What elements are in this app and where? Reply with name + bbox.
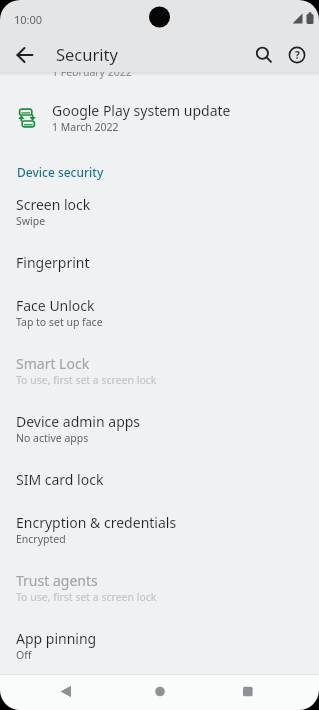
staticText: Fingerprint	[16, 253, 90, 272]
staticText: Security	[56, 43, 118, 65]
button[interactable]: Fingerprint	[0, 245, 319, 288]
staticText: Off	[16, 648, 32, 662]
button[interactable]: SIM card lock	[0, 462, 319, 505]
button[interactable]: ?	[281, 39, 313, 71]
staticText: SIM card lock	[16, 470, 104, 489]
staticText: Smart Lock	[16, 354, 90, 373]
button[interactable]: Smart Lock	[0, 346, 319, 404]
button[interactable]: Encryption & credentials	[0, 505, 319, 563]
staticText: 10:00	[14, 12, 43, 27]
staticText: 1 March 2022	[52, 120, 119, 134]
staticText: ?	[295, 48, 300, 62]
button[interactable]: Trust agents	[0, 563, 319, 621]
staticText: Face Unlock	[16, 296, 95, 315]
staticText: 1 February 2022	[52, 65, 132, 79]
staticText: To use, first set a screen lock	[16, 590, 157, 604]
button[interactable]: Screen lock	[0, 187, 319, 245]
staticText: Encryption & credentials	[16, 513, 177, 532]
button[interactable]	[107, 674, 213, 710]
button[interactable]	[248, 39, 280, 71]
button[interactable]	[213, 674, 319, 710]
staticText: App pinning	[16, 629, 97, 648]
button[interactable]: Face Unlock	[0, 288, 319, 346]
button[interactable]: App pinning	[0, 621, 319, 679]
button[interactable]: Google Play system update	[0, 93, 319, 151]
staticText: Device security	[17, 164, 104, 180]
button[interactable]	[0, 674, 107, 710]
button[interactable]	[9, 39, 41, 71]
staticText: Encrypted	[16, 532, 66, 546]
staticText: Swipe	[16, 214, 46, 228]
staticText: Google Play system update	[52, 101, 231, 120]
staticText: To use, first set a screen lock	[16, 373, 157, 387]
staticText: Trust agents	[16, 571, 98, 590]
staticText: No active apps	[16, 431, 89, 445]
staticText: Device admin apps	[16, 412, 141, 431]
staticText: Tap to set up face	[16, 315, 103, 329]
staticText: Screen lock	[16, 195, 91, 214]
button[interactable]: Device admin apps	[0, 404, 319, 462]
